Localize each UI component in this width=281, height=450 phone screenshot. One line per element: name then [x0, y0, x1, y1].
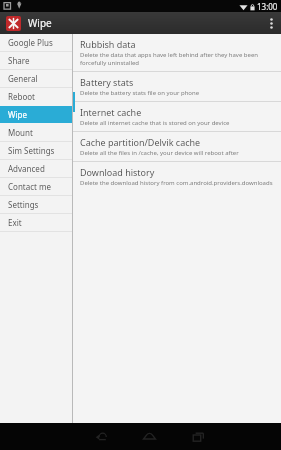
button[interactable]: Home — [125, 423, 174, 450]
staticText: Delete all the files in /cache, your dev… — [80, 149, 239, 157]
staticText: Delete all internet cache that is stored… — [80, 119, 230, 127]
button[interactable]: Share — [0, 52, 72, 69]
staticText: Cache partition/Delvik cache — [80, 136, 201, 148]
button[interactable]: Reboot — [0, 88, 72, 105]
staticText: Delete the battery stats file on your ph… — [80, 89, 200, 97]
button[interactable]: Download history — [73, 162, 281, 191]
staticText: Advanced — [8, 163, 45, 174]
button[interactable]: Exit — [0, 214, 72, 231]
button[interactable]: Google Plus — [0, 34, 72, 51]
button[interactable]: Recent apps — [174, 423, 223, 450]
staticText: Reboot — [8, 91, 35, 102]
staticText: Mount — [8, 127, 33, 138]
button[interactable]: Cache partition/Delvik cache — [73, 132, 281, 161]
staticText: Battery stats — [80, 76, 134, 88]
staticText: Google Plus — [8, 37, 53, 48]
staticText: Internet cache — [80, 106, 142, 118]
button[interactable]: Sim Settings — [0, 142, 72, 159]
button[interactable]: Wipe app icon — [6, 16, 21, 31]
staticText: Download history — [80, 166, 155, 178]
staticText: General — [8, 73, 38, 84]
button[interactable]: Settings — [0, 196, 72, 213]
staticText: Exit — [8, 217, 22, 228]
staticText: Wipe — [28, 16, 52, 30]
staticText: Settings — [8, 199, 39, 210]
staticText: Contact me — [8, 181, 52, 192]
button[interactable]: Back — [76, 423, 125, 450]
staticText: Sim Settings — [8, 145, 55, 156]
staticText: Delete the download history from com.and… — [80, 179, 273, 187]
staticText: Wipe — [8, 109, 27, 120]
button[interactable]: Battery stats — [73, 72, 281, 101]
button[interactable]: Advanced — [0, 160, 72, 177]
button[interactable]: Rubbish data — [73, 34, 281, 71]
button[interactable]: Internet cache — [73, 102, 281, 131]
staticText: 13:00 — [257, 1, 278, 12]
button[interactable]: General — [0, 70, 72, 87]
button[interactable]: Wipe — [0, 106, 72, 123]
staticText: Share — [8, 55, 30, 66]
button[interactable]: More options — [261, 12, 281, 34]
staticText: Delete the data that apps have left behi… — [80, 51, 273, 67]
button[interactable]: Mount — [0, 124, 72, 141]
staticText: Rubbish data — [80, 38, 136, 50]
button[interactable]: Contact me — [0, 178, 72, 195]
